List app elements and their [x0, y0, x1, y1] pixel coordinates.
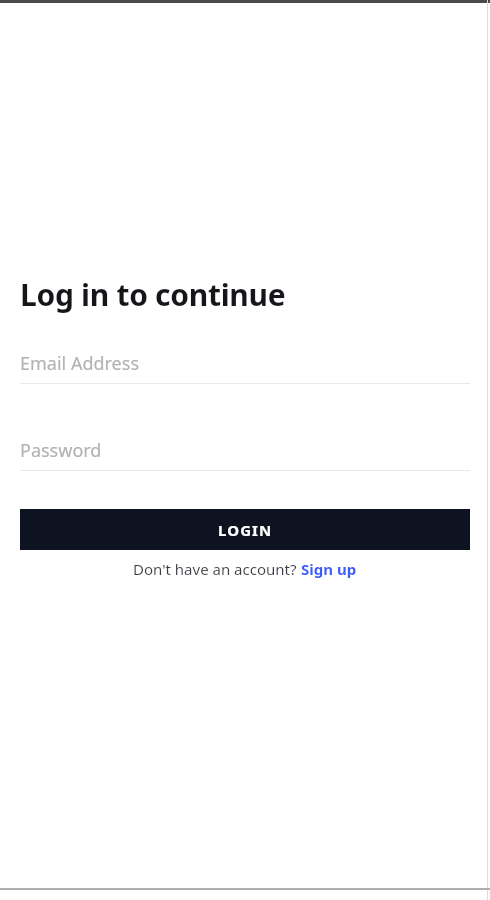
button[interactable]: Sign up: [301, 559, 357, 579]
button[interactable]: LOGIN: [20, 509, 470, 550]
staticText: Password: [20, 438, 102, 463]
staticText: Sign up: [301, 559, 357, 579]
staticText: Email Address: [20, 351, 140, 376]
button[interactable]: Email Address: [20, 351, 470, 384]
staticText: Don't have an account?: [133, 559, 301, 579]
staticText: LOGIN: [218, 520, 273, 540]
button[interactable]: Password: [20, 438, 470, 471]
staticText: Log in to continue: [20, 274, 286, 315]
